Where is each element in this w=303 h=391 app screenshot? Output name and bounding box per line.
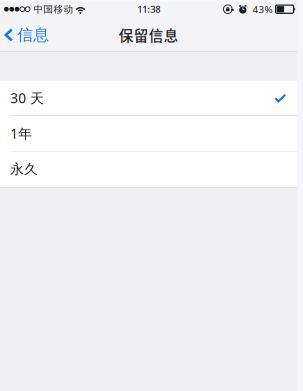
- staticText: 信息: [17, 25, 49, 45]
- button[interactable]: 永久: [0, 151, 297, 187]
- staticText: 中国移动: [33, 3, 73, 15]
- staticText: 43%: [253, 2, 273, 16]
- staticText: 保留信息: [119, 24, 179, 45]
- button[interactable]: 1年: [0, 116, 297, 151]
- button[interactable]: 30 天: [0, 80, 297, 116]
- button[interactable]: 信息: [0, 18, 55, 51]
- staticText: 11:38: [137, 3, 160, 16]
- staticText: 30 天: [10, 89, 44, 107]
- staticText: 1年: [10, 124, 32, 143]
- staticText: 永久: [10, 161, 38, 178]
